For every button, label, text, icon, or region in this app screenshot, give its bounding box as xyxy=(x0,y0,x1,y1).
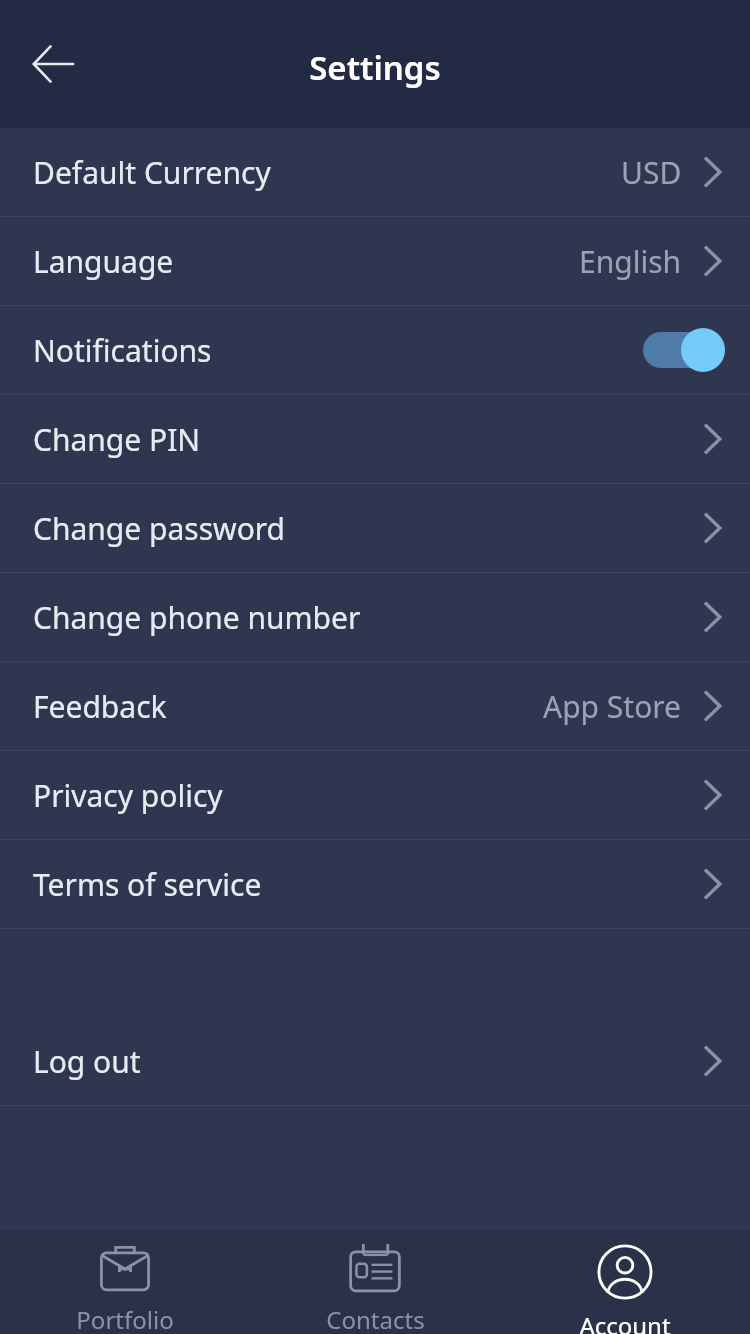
staticText: Log out xyxy=(33,1041,141,1082)
button[interactable]: Notifications xyxy=(0,306,750,394)
staticText: Terms of service xyxy=(33,864,262,905)
button[interactable]: Account xyxy=(500,1229,750,1334)
button[interactable]: Terms of service xyxy=(0,840,750,928)
staticText: Language xyxy=(33,241,174,282)
staticText: App Store xyxy=(543,686,682,727)
staticText: Change phone number xyxy=(33,597,361,638)
staticText: Contacts xyxy=(326,1303,425,1334)
button[interactable]: Language xyxy=(0,217,750,305)
button[interactable]: Default Currency xyxy=(0,128,750,216)
button[interactable]: Log out xyxy=(0,1017,750,1105)
staticText: English xyxy=(579,241,682,282)
staticText: Portfolio xyxy=(76,1303,174,1334)
button[interactable]: Feedback xyxy=(0,662,750,750)
staticText: Privacy policy xyxy=(33,775,223,816)
other: Notifications toggle xyxy=(641,328,725,372)
staticText: USD xyxy=(621,152,682,193)
button[interactable]: Change PIN xyxy=(0,395,750,483)
button[interactable]: Change phone number xyxy=(0,573,750,661)
staticText: Change password xyxy=(33,508,286,549)
staticText: Change PIN xyxy=(33,419,201,460)
button[interactable]: Privacy policy xyxy=(0,751,750,839)
button[interactable]: Portfolio xyxy=(0,1229,250,1334)
staticText: Notifications xyxy=(33,330,212,371)
button[interactable]: Back xyxy=(14,24,94,104)
button[interactable]: Contacts xyxy=(250,1229,500,1334)
staticText: Default Currency xyxy=(33,152,271,193)
staticText: Account xyxy=(579,1309,671,1334)
button[interactable]: Change password xyxy=(0,484,750,572)
staticText: Feedback xyxy=(33,686,167,727)
staticText: Settings xyxy=(309,45,441,90)
